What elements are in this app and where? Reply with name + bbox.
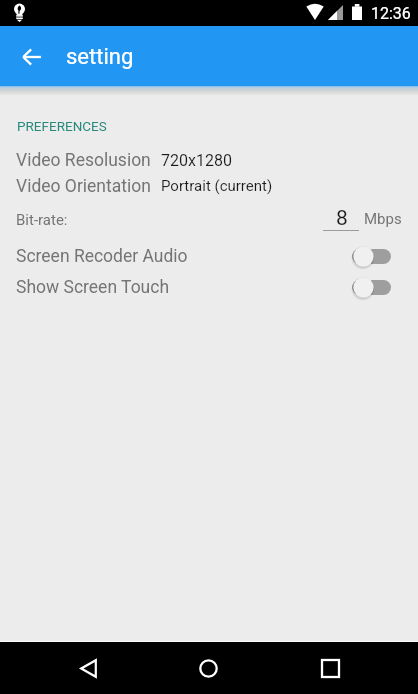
staticText: Video Resolusion bbox=[16, 150, 151, 171]
button[interactable]: Bit-rate: bbox=[0, 205, 418, 237]
staticText: 8 bbox=[336, 206, 348, 231]
button[interactable]: Video Orientation bbox=[0, 173, 418, 199]
button[interactable]: Screen Recoder Audio bbox=[0, 241, 418, 272]
staticText: Portrait (current) bbox=[161, 177, 273, 195]
staticText: Mbps bbox=[364, 210, 402, 228]
button[interactable]: Back bbox=[64, 642, 112, 694]
staticText: Bit-rate: bbox=[16, 211, 68, 229]
staticText: 720x1280 bbox=[161, 151, 232, 170]
button[interactable]: Navigate up bbox=[8, 26, 54, 87]
staticText: setting bbox=[66, 44, 134, 70]
staticText: 12:36 bbox=[371, 4, 411, 23]
staticText: Show Screen Touch bbox=[16, 277, 170, 298]
button[interactable]: Show Screen Touch bbox=[0, 272, 418, 303]
button[interactable]: Screen Recoder Audio, off bbox=[352, 245, 391, 268]
button[interactable]: Recent apps bbox=[306, 642, 354, 694]
button[interactable]: Video Resolusion bbox=[0, 147, 418, 173]
button[interactable]: Home bbox=[184, 642, 232, 694]
staticText: Video Orientation bbox=[16, 176, 151, 197]
button[interactable]: Show Screen Touch, off bbox=[352, 276, 391, 299]
staticText: PREFERENCES bbox=[17, 118, 107, 134]
staticText: Screen Recoder Audio bbox=[16, 246, 188, 267]
